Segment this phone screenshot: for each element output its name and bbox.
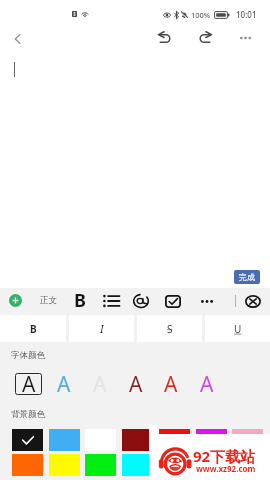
staticText: A bbox=[93, 370, 107, 392]
button[interactable]: Text colour bbox=[86, 373, 113, 395]
staticText: A bbox=[164, 370, 178, 392]
staticText: B bbox=[30, 322, 37, 336]
button[interactable]: Checklist bbox=[162, 290, 184, 312]
button[interactable]: Redo bbox=[193, 26, 217, 50]
staticText: 正文 bbox=[40, 295, 57, 306]
button[interactable]: Undo bbox=[153, 26, 177, 50]
button[interactable]: I bbox=[69, 315, 134, 342]
button[interactable]: 完成 bbox=[234, 270, 260, 284]
button[interactable]: Background colour bbox=[232, 454, 263, 476]
staticText: 10:01 bbox=[236, 9, 257, 20]
button[interactable]: More formatting bbox=[196, 290, 218, 312]
staticText: A bbox=[200, 370, 214, 392]
button[interactable]: Text colour bbox=[50, 373, 77, 395]
button[interactable]: Bulleted list bbox=[100, 290, 122, 312]
staticText: S bbox=[167, 322, 173, 336]
staticText: A bbox=[22, 370, 36, 392]
staticText: 92下载站 bbox=[193, 446, 256, 466]
button[interactable]: U bbox=[205, 315, 270, 342]
staticText: 背景颜色 bbox=[11, 409, 45, 420]
button[interactable]: Text colour bbox=[157, 373, 184, 395]
button[interactable]: Close toolbar bbox=[242, 290, 264, 312]
button[interactable]: B bbox=[0, 315, 66, 342]
button[interactable]: Text colour bbox=[122, 373, 149, 395]
button[interactable]: Bold bbox=[70, 289, 92, 311]
button[interactable]: Mention bbox=[130, 290, 152, 312]
button[interactable]: Text colour bbox=[193, 373, 220, 395]
button[interactable]: Back bbox=[5, 26, 30, 51]
button[interactable]: Background colour bbox=[196, 454, 227, 476]
staticText: A bbox=[57, 370, 71, 392]
staticText: 完成 bbox=[239, 272, 255, 282]
staticText: B bbox=[74, 288, 86, 310]
button[interactable]: Background colour bbox=[12, 429, 43, 451]
button[interactable]: Background colour bbox=[159, 429, 190, 451]
button[interactable]: Background colour bbox=[159, 454, 190, 476]
button[interactable]: Insert bbox=[9, 294, 22, 307]
staticText: I bbox=[100, 322, 104, 336]
button[interactable]: Background colour bbox=[232, 429, 263, 451]
staticText: 100% bbox=[191, 10, 211, 20]
staticText: 字体颜色 bbox=[11, 350, 45, 361]
button[interactable]: Background colour bbox=[196, 429, 227, 451]
staticText: www.xz92.com bbox=[196, 463, 256, 474]
button[interactable]: 正文 bbox=[38, 292, 59, 309]
button[interactable]: Background colour bbox=[122, 454, 153, 476]
button[interactable]: Background colour bbox=[122, 429, 153, 451]
button[interactable]: S bbox=[137, 315, 202, 342]
button[interactable]: Text colour bbox=[15, 373, 42, 395]
staticText: A bbox=[129, 370, 143, 392]
button[interactable]: More options bbox=[233, 26, 257, 50]
staticText: U bbox=[234, 322, 242, 336]
